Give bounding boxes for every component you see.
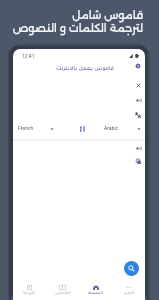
button[interactable]: القاموس bbox=[46, 279, 79, 295]
staticText: قاموس شامل bbox=[72, 8, 143, 21]
button[interactable]: Swap languages bbox=[75, 121, 90, 136]
staticText: المزيد bbox=[124, 291, 134, 295]
button[interactable]: Copy bbox=[131, 154, 145, 168]
button[interactable]: Close bbox=[131, 78, 145, 92]
staticText: القاموس bbox=[55, 291, 71, 295]
button[interactable]: الترجمة bbox=[13, 279, 46, 295]
staticText: لترجمة الكلمات و النصوص bbox=[12, 21, 143, 34]
staticText: Arabic bbox=[104, 125, 119, 131]
button[interactable]: Listen bbox=[131, 93, 145, 107]
button[interactable]: Search bbox=[124, 261, 139, 276]
button[interactable]: Settings bbox=[131, 59, 145, 73]
staticText: قاموس يعمل بالانترنت bbox=[56, 66, 114, 72]
button[interactable]: المزيد bbox=[112, 279, 145, 295]
staticText: 12:41 bbox=[22, 53, 35, 59]
staticText: French bbox=[18, 125, 34, 131]
staticText: المفضلة bbox=[88, 291, 103, 295]
button[interactable]: المفضلة bbox=[79, 279, 112, 295]
button[interactable]: Translate bbox=[131, 108, 145, 122]
staticText: الترجمة bbox=[23, 291, 36, 295]
button[interactable]: Listen to translation bbox=[131, 141, 145, 155]
